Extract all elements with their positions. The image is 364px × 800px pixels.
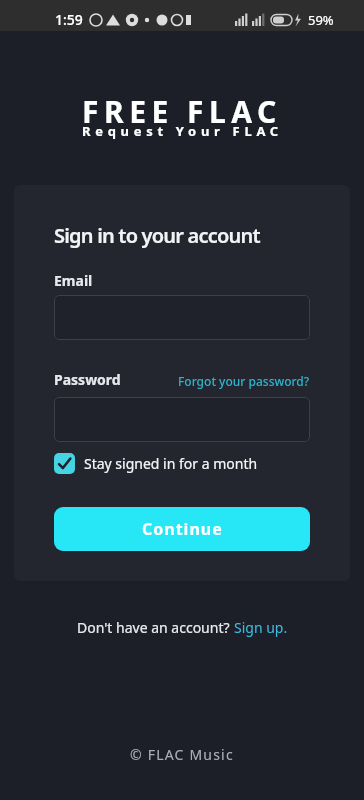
button[interactable]	[54, 397, 310, 442]
staticText: © FLAC Music	[130, 745, 234, 764]
button[interactable]: Sign up.	[234, 618, 288, 637]
button[interactable]	[54, 295, 310, 340]
button[interactable]: Continue	[54, 507, 310, 551]
button[interactable]: Forgot your password?	[178, 373, 310, 389]
staticText: Request Your FLAC	[82, 122, 283, 140]
staticText: Don't have an account?	[77, 618, 234, 637]
staticText: Stay signed in for a month	[84, 454, 258, 473]
staticText: FREE FLAC	[82, 91, 282, 132]
staticText: Sign in to your account	[54, 222, 260, 249]
staticText: Password	[54, 370, 121, 389]
staticText: Continue	[142, 518, 223, 540]
staticText: Email	[54, 271, 93, 290]
button[interactable]: Stay signed in for a month	[54, 453, 258, 474]
staticText: 1:59	[55, 10, 83, 29]
staticText: 59%	[308, 11, 334, 29]
